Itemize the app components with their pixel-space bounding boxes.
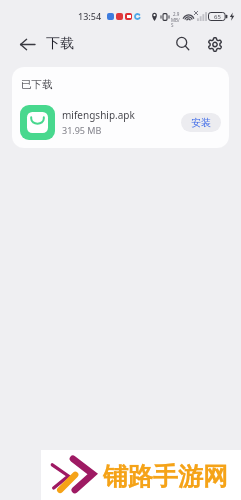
staticText: 2.9 [173, 11, 180, 17]
staticText: mifengship.apk [62, 108, 135, 122]
staticText: 已下载 [21, 78, 53, 91]
button[interactable]: Back [12, 29, 42, 59]
staticText: 铺路手游网 [103, 461, 228, 492]
staticText: 下载 [46, 35, 74, 53]
staticText: 13:54 [78, 10, 102, 22]
staticText: 安装 [191, 116, 211, 129]
staticText: 65 [214, 13, 221, 21]
button[interactable]: 安装 [181, 113, 221, 132]
button[interactable]: Search [168, 29, 198, 59]
button[interactable]: Settings [200, 29, 230, 59]
button[interactable]: mifengship.apk [12, 100, 229, 144]
staticText: MB/S [171, 17, 182, 28]
staticText: 31.95 MB [62, 124, 102, 136]
